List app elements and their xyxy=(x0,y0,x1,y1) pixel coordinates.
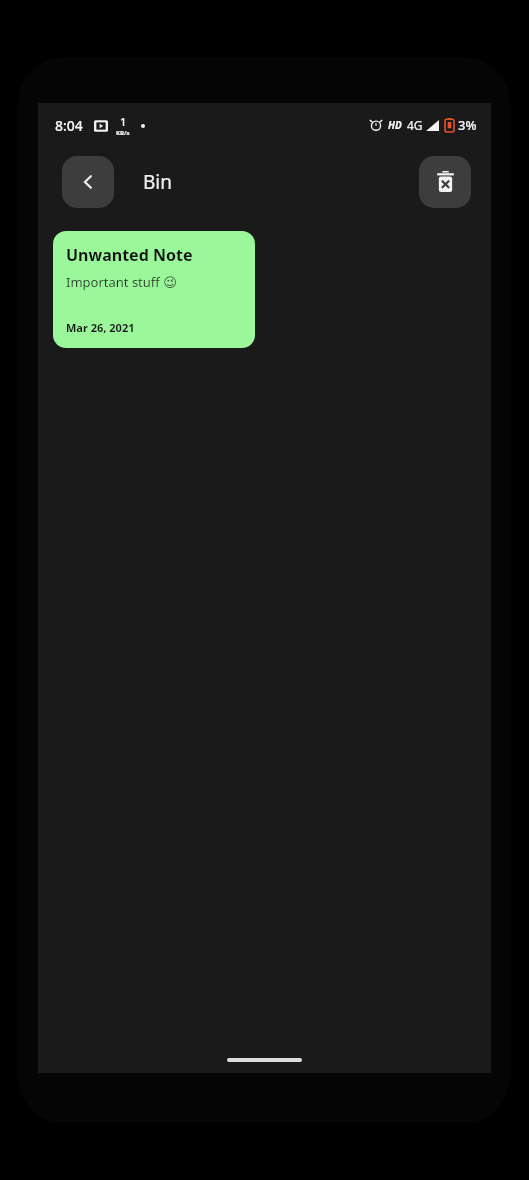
staticText: 3% xyxy=(458,116,477,134)
staticText: KB/s xyxy=(116,129,130,137)
staticText: Unwanted Note xyxy=(66,244,193,266)
staticText: Important stuff 😉 xyxy=(66,273,177,291)
staticText: 8:04 xyxy=(55,116,83,135)
staticText: Mar 26, 2021 xyxy=(66,320,135,335)
button[interactable]: Empty bin xyxy=(419,156,471,208)
staticText: Bin xyxy=(143,169,172,195)
staticText: 4G xyxy=(407,117,423,133)
staticText: 1 xyxy=(120,114,127,129)
button[interactable]: Unwanted Note xyxy=(53,231,255,348)
button[interactable]: Back xyxy=(62,156,114,208)
staticText: HD xyxy=(388,118,402,132)
